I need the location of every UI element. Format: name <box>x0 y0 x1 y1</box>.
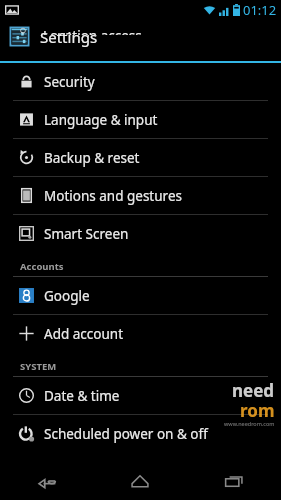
staticText: Date & time <box>44 387 120 405</box>
button[interactable]: Recent apps <box>187 462 281 500</box>
button[interactable]: Security <box>0 63 281 100</box>
staticText: need <box>232 379 275 402</box>
button[interactable]: Motions and gestures <box>0 177 281 214</box>
button[interactable]: Home <box>93 462 187 500</box>
button[interactable]: Language & input <box>0 101 281 138</box>
staticText: Settings <box>40 27 98 47</box>
staticText: Google <box>44 287 90 305</box>
staticText: SYSTEM <box>20 360 57 373</box>
button[interactable]: Google <box>0 277 281 314</box>
button[interactable]: Date & time <box>0 377 281 414</box>
staticText: Backup & reset <box>44 149 140 167</box>
staticText: www.needrom.com <box>224 420 275 427</box>
button[interactable]: Smart Screen <box>0 215 281 252</box>
button[interactable]: Backup & reset <box>0 139 281 176</box>
staticText: Security <box>44 73 95 91</box>
button[interactable]: Scheduled power on & off <box>0 415 281 452</box>
staticText: Motions and gestures <box>44 187 182 205</box>
staticText: 01:12 <box>243 1 277 19</box>
staticText: Location access <box>43 27 142 35</box>
button[interactable]: Back <box>0 462 93 500</box>
staticText: Accounts <box>20 260 64 273</box>
staticText: Smart Screen <box>44 225 129 243</box>
staticText: Add account <box>44 325 124 343</box>
staticText: Language & input <box>44 111 158 129</box>
staticText: rom <box>240 399 275 422</box>
button[interactable]: Settings <box>0 20 281 53</box>
button[interactable]: Add account <box>0 315 281 352</box>
staticText: Scheduled power on & off <box>44 425 208 443</box>
